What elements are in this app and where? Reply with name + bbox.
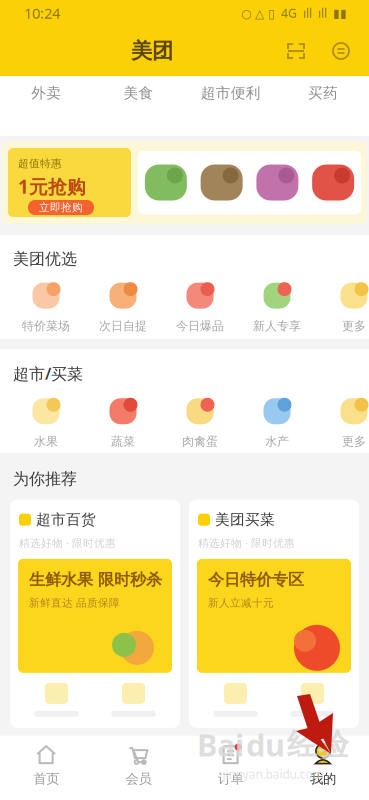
staticText: 生鲜水果 限时秒杀 xyxy=(29,570,162,589)
staticText: 精选好物 · 限时优惠 xyxy=(19,536,116,550)
staticText: ○ △ ▯ 4G ıll ıll ▮▮ xyxy=(241,5,347,21)
staticText: 水产 xyxy=(265,434,289,449)
staticText: 立即抢购 xyxy=(39,201,83,214)
button[interactable] xyxy=(142,158,190,206)
button[interactable]: 水果 xyxy=(7,396,84,449)
button[interactable]: 超市便利 xyxy=(184,84,277,102)
button[interactable]: 买药 xyxy=(277,84,369,102)
button[interactable]: 首页 xyxy=(0,744,92,787)
staticText: 外卖 xyxy=(31,84,61,102)
staticText: 订单 xyxy=(218,771,244,787)
button[interactable]: 订单 xyxy=(184,744,277,787)
button[interactable]: 肉禽蛋 xyxy=(161,396,238,449)
staticText: 特价菜场 xyxy=(22,319,70,333)
staticText: 美团买菜 xyxy=(215,511,275,529)
button[interactable] xyxy=(309,158,357,206)
button[interactable]: Scan xyxy=(286,41,306,61)
staticText: 10:24 xyxy=(24,3,60,23)
staticText: Bai xyxy=(197,724,244,765)
staticText: 经验 xyxy=(287,726,349,764)
button[interactable]: 次日自提 xyxy=(84,281,161,333)
button[interactable]: 今日爆品 xyxy=(161,281,238,333)
button[interactable] xyxy=(253,158,301,206)
button[interactable]: Messages xyxy=(331,41,351,61)
staticText: 会员 xyxy=(125,771,151,787)
staticText: 超市便利 xyxy=(201,84,261,102)
staticText: 蔬菜 xyxy=(111,434,135,449)
button[interactable]: 美团买菜 xyxy=(189,500,359,728)
button[interactable]: 外卖 xyxy=(0,84,92,102)
button[interactable]: 蔬菜 xyxy=(84,396,161,449)
staticText: 新人专享 xyxy=(253,319,301,333)
button[interactable]: 会员 xyxy=(92,744,184,787)
staticText: 更多 xyxy=(342,319,366,333)
staticText: 1元抢购 xyxy=(18,174,86,199)
staticText: 水果 xyxy=(34,434,58,449)
button[interactable]: 我的 xyxy=(277,744,369,787)
button[interactable]: 超市百货 xyxy=(10,500,180,728)
button[interactable]: 水产 xyxy=(238,396,315,449)
staticText: 超市/买菜 xyxy=(13,363,83,384)
staticText: 买药 xyxy=(308,84,338,102)
button[interactable]: 特价菜场 xyxy=(7,281,84,333)
staticText: 我的 xyxy=(310,771,336,787)
staticText: 次日自提 xyxy=(99,319,147,333)
staticText: 今日特价专区 xyxy=(208,570,304,589)
button[interactable] xyxy=(198,158,246,206)
staticText: 超市百货 xyxy=(36,511,96,529)
staticText: 更多 xyxy=(342,434,366,449)
staticText: 新人立减十元 xyxy=(208,596,274,610)
staticText: 超值特惠 xyxy=(18,157,62,170)
staticText: 新鲜直达 品质保障 xyxy=(29,596,120,610)
staticText: jingyan.baidu.com xyxy=(222,766,323,782)
staticText: 肉禽蛋 xyxy=(182,434,218,449)
button[interactable]: 美食 xyxy=(92,84,184,102)
staticText: 今日爆品 xyxy=(176,319,224,333)
staticText: du xyxy=(246,724,285,765)
button[interactable]: 新人专享 xyxy=(238,281,315,333)
button[interactable]: 更多 xyxy=(315,281,369,333)
button[interactable]: 更多 xyxy=(315,396,369,449)
staticText: 首页 xyxy=(33,771,59,787)
staticText: 精选好物 · 限时优惠 xyxy=(198,536,295,550)
staticText: 美团 xyxy=(131,38,173,64)
staticText: 美食 xyxy=(123,84,153,102)
staticText: 为你推荐 xyxy=(13,469,77,489)
staticText: 美团优选 xyxy=(13,249,77,269)
